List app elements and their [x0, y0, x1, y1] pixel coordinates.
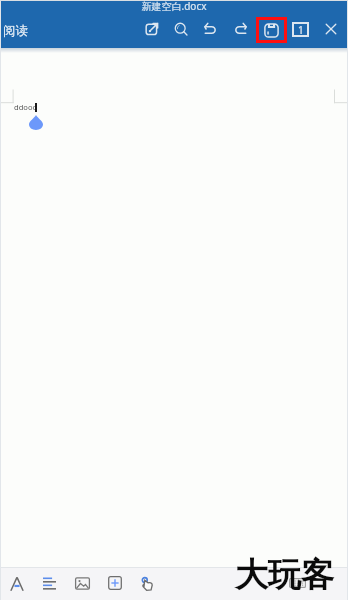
button[interactable]: Redo	[229, 17, 253, 41]
button[interactable]: Font	[5, 572, 29, 596]
button[interactable]: Keyboard	[289, 578, 306, 588]
button[interactable]: Save	[256, 17, 287, 43]
button[interactable]: Undo	[198, 17, 222, 41]
staticText: ddooo	[14, 102, 38, 112]
button[interactable]: Page count	[292, 22, 309, 37]
staticText: 1	[298, 23, 304, 37]
button[interactable]: Insert picture	[70, 571, 94, 595]
button[interactable]: 阅读	[2, 23, 29, 39]
button[interactable]: Insert	[103, 571, 127, 595]
button[interactable]: Paragraph	[37, 571, 61, 595]
staticText: 阅读	[3, 23, 28, 39]
button[interactable]: Open in browser	[139, 17, 163, 41]
button[interactable]: Close	[319, 17, 343, 41]
staticText: 新建空白.docx	[0, 0, 348, 13]
staticText: 大玩客	[235, 554, 334, 596]
button[interactable]: Search	[169, 17, 193, 41]
button[interactable]: Select	[136, 572, 160, 596]
